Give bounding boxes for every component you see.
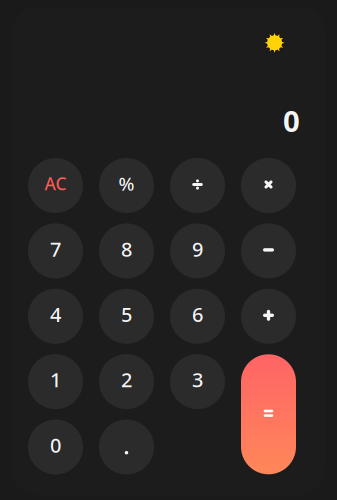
button[interactable]: 9 (170, 223, 225, 278)
button[interactable]: % (99, 158, 154, 213)
button[interactable]: 6 (170, 289, 225, 344)
staticText: 0 (50, 432, 61, 458)
button[interactable]: Decimal point (99, 419, 154, 474)
button[interactable]: 5 (99, 289, 154, 344)
button[interactable]: 2 (99, 354, 154, 409)
button[interactable]: AC (28, 158, 83, 213)
button[interactable]: 4 (28, 289, 83, 344)
staticText: 5 (121, 301, 132, 328)
staticText: 2 (121, 366, 132, 393)
staticText: 8 (121, 236, 132, 262)
button[interactable]: Plus (241, 289, 296, 344)
button[interactable]: 1 (28, 354, 83, 409)
staticText: AC (44, 172, 66, 195)
staticText: 9 (192, 236, 203, 262)
button[interactable]: 7 (28, 223, 83, 278)
button[interactable]: 0 (28, 419, 83, 474)
button[interactable]: Divide (170, 158, 225, 213)
staticText: 3 (192, 366, 203, 393)
staticText: 0 (283, 101, 300, 140)
staticText: 6 (192, 301, 203, 328)
staticText: 7 (50, 236, 61, 262)
button[interactable]: Equals (241, 354, 296, 474)
button[interactable]: Multiply (241, 158, 296, 213)
staticText: % (118, 171, 134, 196)
button[interactable]: 3 (170, 354, 225, 409)
staticText: 1 (50, 366, 61, 393)
button[interactable]: Switch appearance (253, 21, 297, 65)
button[interactable]: 8 (99, 223, 154, 278)
button[interactable]: Minus (241, 223, 296, 278)
staticText: 4 (50, 301, 61, 328)
